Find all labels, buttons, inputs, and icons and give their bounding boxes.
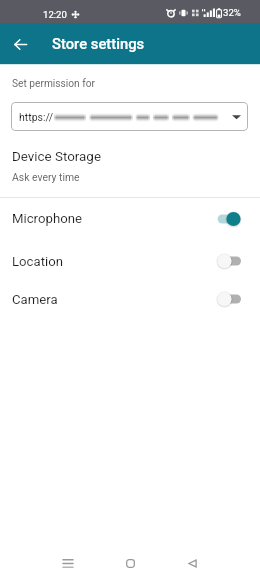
staticText: Ask every time (12, 171, 80, 183)
staticText: Location (12, 254, 64, 269)
button[interactable]: Back (174, 545, 210, 580)
staticText: 32% (223, 7, 241, 18)
staticText: https:// (19, 111, 54, 123)
staticText: Device Storage (12, 149, 101, 165)
button[interactable]: Recent apps (50, 545, 86, 580)
staticText: 12:20 (43, 9, 67, 20)
staticText: Camera (12, 292, 58, 307)
staticText: Set permission for (12, 78, 96, 90)
staticText: Store settings (52, 35, 145, 52)
button[interactable]: Microphone (0, 197, 260, 240)
button[interactable]: Navigate up (6, 30, 34, 58)
button[interactable]: https:// (11, 102, 248, 131)
button[interactable]: Camera (0, 280, 260, 318)
button[interactable]: Home (112, 545, 148, 580)
staticText: Microphone (12, 211, 82, 226)
button[interactable]: Location (0, 240, 260, 282)
